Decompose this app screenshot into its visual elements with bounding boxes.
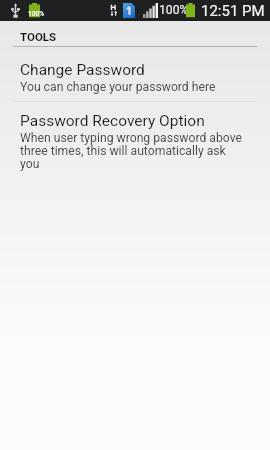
other: HSPA data transfer — [110, 4, 119, 16]
button[interactable]: Change Password — [0, 47, 270, 101]
staticText: Password Recovery Option — [20, 112, 205, 130]
staticText: Change Password — [20, 61, 145, 79]
staticText: 12:51 PM — [201, 2, 265, 20]
staticText: TOOLS — [20, 30, 57, 43]
staticText: When user typing wrong password above th… — [20, 131, 245, 171]
button[interactable]: Password Recovery Option — [0, 102, 270, 183]
staticText: You can change your password here — [20, 80, 216, 94]
other: SIM card 1 — [123, 3, 135, 18]
staticText: 100% — [28, 10, 45, 18]
other: Battery charging 100 percent — [29, 3, 40, 18]
other: Battery 100 percent — [186, 3, 195, 18]
other: Signal strength — [143, 3, 158, 18]
other: USB connected — [10, 3, 21, 18]
staticText: 100% — [159, 3, 189, 17]
